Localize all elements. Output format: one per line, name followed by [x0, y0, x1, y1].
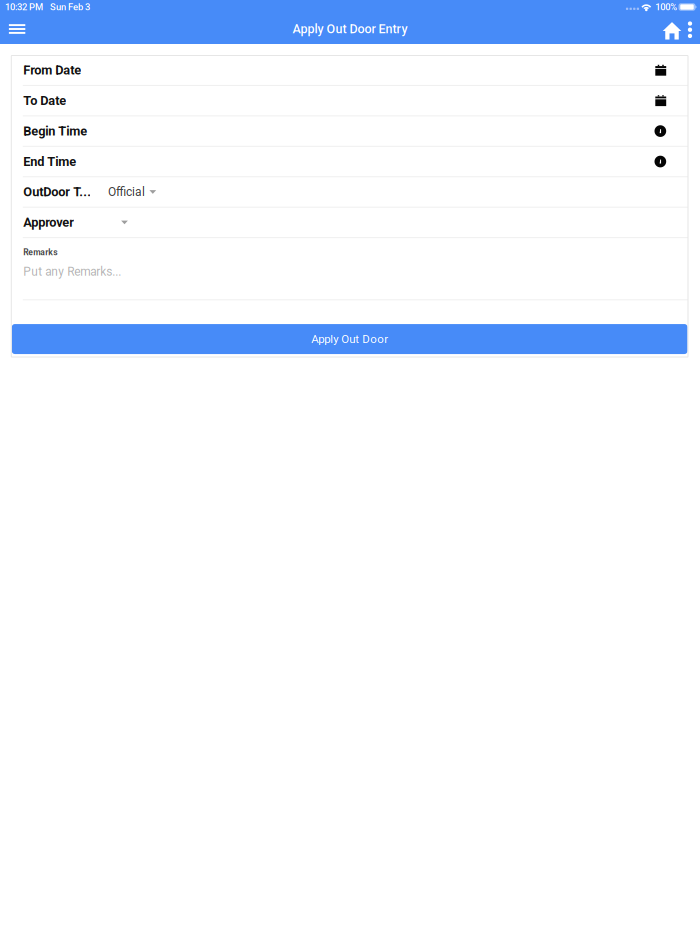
staticText: Sun Feb 3	[50, 1, 90, 12]
staticText: Remarks	[23, 247, 57, 257]
button[interactable]: Menu	[5, 14, 30, 44]
staticText: 100%	[655, 1, 677, 12]
staticText: Approver	[23, 215, 74, 230]
button[interactable]: From Date	[11, 55, 688, 85]
staticText: Apply Out Door	[311, 332, 388, 346]
staticText: From Date	[23, 63, 81, 78]
staticText: Official	[108, 185, 145, 199]
button[interactable]: End Time	[11, 147, 688, 176]
button[interactable]: OutDoor T...	[11, 177, 688, 207]
button[interactable]: Home	[662, 14, 682, 44]
staticText: Apply Out Door Entry	[292, 22, 407, 36]
staticText: To Date	[23, 93, 66, 108]
button[interactable]: More options	[682, 14, 698, 44]
staticText: OutDoor T...	[23, 184, 91, 199]
button[interactable]: Apply Out Door	[12, 324, 687, 354]
button[interactable]: Remarks	[11, 238, 688, 299]
staticText: Begin Time	[23, 124, 87, 139]
staticText: End Time	[23, 154, 76, 169]
button[interactable]: Approver	[11, 208, 688, 237]
staticText: 10:32 PM	[5, 1, 43, 12]
staticText: Put any Remarks...	[23, 265, 121, 279]
button[interactable]: To Date	[11, 86, 688, 115]
button[interactable]: Begin Time	[11, 116, 688, 146]
